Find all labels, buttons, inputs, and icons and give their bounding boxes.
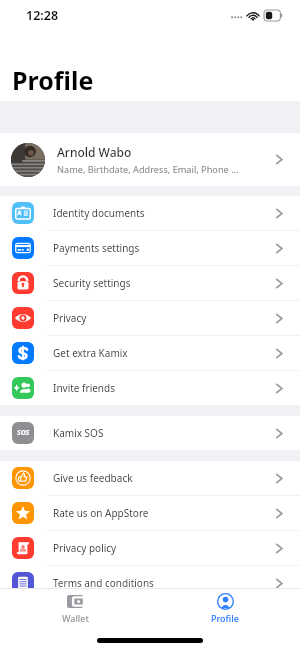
button[interactable]: Privacy policy bbox=[0, 531, 300, 566]
staticText: Kamix SOS bbox=[53, 426, 274, 440]
staticText: Rate us on AppStore bbox=[53, 506, 274, 520]
staticText: Get extra Kamix bbox=[53, 346, 274, 360]
button[interactable]: Get extra Kamix bbox=[0, 336, 300, 371]
staticText: Privacy bbox=[53, 311, 274, 325]
button[interactable]: Arnold Wabo bbox=[0, 133, 300, 186]
staticText: Terms and conditions bbox=[53, 576, 274, 590]
button[interactable]: Terms and conditions bbox=[0, 566, 300, 601]
button[interactable]: Invite friends bbox=[0, 371, 300, 405]
staticText: Profile bbox=[211, 612, 239, 623]
staticText: Payments settings bbox=[53, 241, 274, 255]
staticText: Profile bbox=[12, 63, 94, 97]
staticText: Identity documents bbox=[53, 206, 274, 220]
button[interactable]: Identity documents bbox=[0, 196, 300, 231]
button[interactable]: Wallet bbox=[30, 589, 120, 623]
button[interactable]: Rate us on AppStore bbox=[0, 496, 300, 531]
staticText: Give us feedback bbox=[53, 471, 274, 485]
staticText: Arnold Wabo bbox=[57, 144, 132, 160]
button[interactable]: Privacy bbox=[0, 301, 300, 336]
staticText: 12:28 bbox=[26, 7, 59, 24]
staticText: SOS bbox=[17, 428, 30, 438]
button[interactable]: Profile bbox=[180, 589, 270, 623]
staticText: Wallet bbox=[62, 612, 89, 623]
staticText: Invite friends bbox=[53, 381, 274, 395]
button[interactable]: SOS bbox=[0, 416, 300, 450]
staticText: Name, Birthdate, Address, Email, Phone … bbox=[57, 163, 239, 176]
button[interactable]: Payments settings bbox=[0, 231, 300, 266]
button[interactable]: Security settings bbox=[0, 266, 300, 301]
staticText: Privacy policy bbox=[53, 541, 274, 555]
button[interactable]: Give us feedback bbox=[0, 461, 300, 496]
staticText: Security settings bbox=[53, 276, 274, 290]
